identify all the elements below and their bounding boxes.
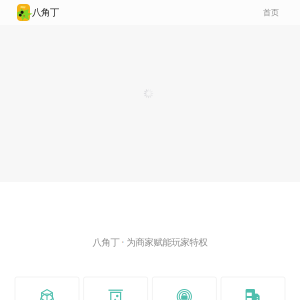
button[interactable] [15, 277, 79, 300]
staticText: 八角丁 [32, 7, 59, 18]
staticText: 首页 [263, 8, 279, 17]
button[interactable]: 首页 [259, 4, 283, 21]
button[interactable]: 八角丁 [17, 1, 59, 24]
button[interactable] [221, 277, 285, 300]
button[interactable] [152, 277, 216, 300]
button[interactable] [84, 277, 148, 300]
staticText: 八角丁 · 为商家赋能玩家特权 [92, 236, 207, 248]
